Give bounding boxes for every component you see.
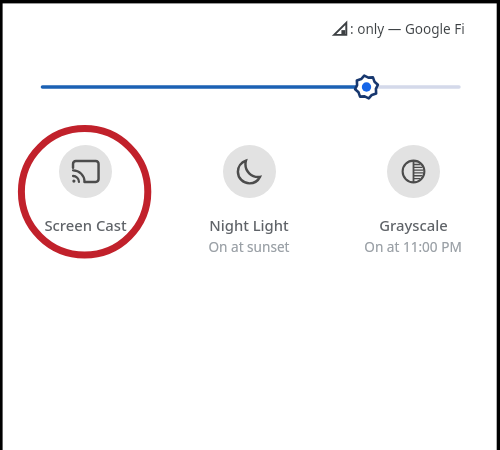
button[interactable]: Brightness slider xyxy=(4,73,495,101)
staticText: Grayscale xyxy=(379,215,448,235)
button[interactable]: Screen Cast xyxy=(4,145,167,235)
button[interactable]: Night Light xyxy=(167,145,331,256)
staticText: Screen Cast xyxy=(44,215,127,235)
staticText: Night Light xyxy=(209,215,289,235)
other: No mobile signal xyxy=(333,22,347,36)
staticText: On at sunset xyxy=(208,237,290,256)
staticText: : only — Google Fi xyxy=(350,19,465,38)
button[interactable]: Grayscale xyxy=(331,145,495,256)
staticText: On at 11:00 PM xyxy=(364,237,462,256)
